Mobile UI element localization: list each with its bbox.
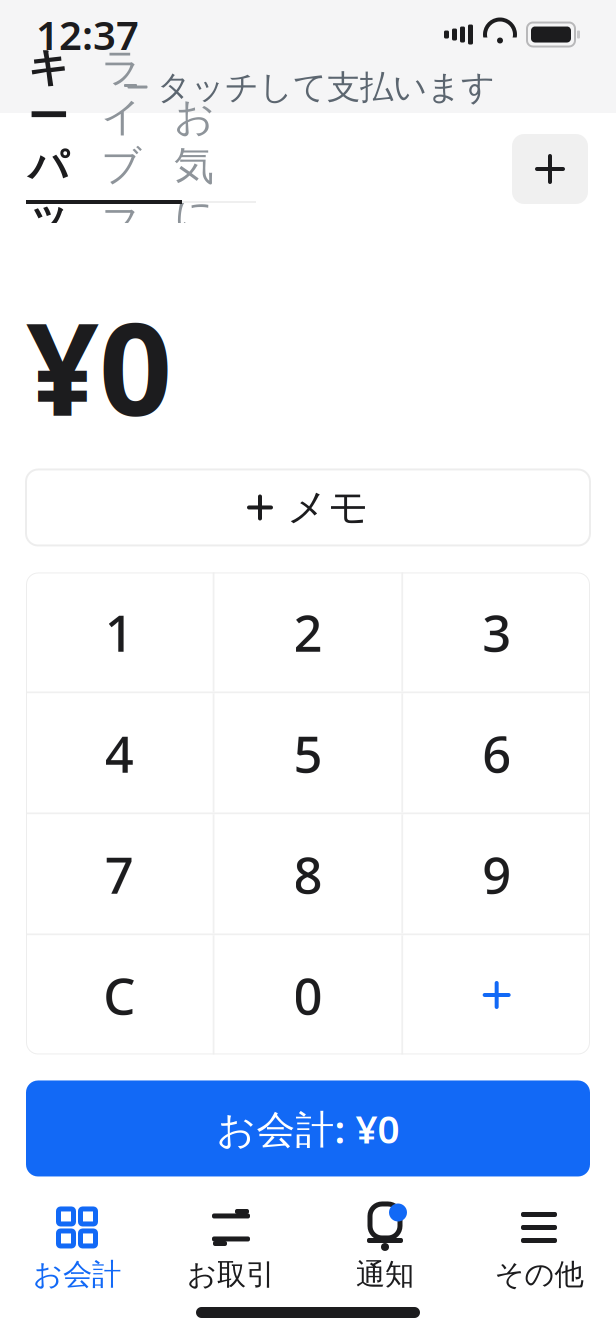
button[interactable]: キーパッド: [26, 43, 71, 289]
button[interactable]: 2: [215, 572, 401, 691]
button[interactable]: 3: [403, 572, 590, 691]
staticText: 2: [293, 598, 322, 666]
staticText: 4: [105, 719, 134, 787]
staticText: 6: [482, 719, 511, 787]
button[interactable]: お取引: [154, 1203, 308, 1297]
button[interactable]: 5: [215, 693, 401, 812]
staticText: お会計: [33, 1256, 121, 1292]
button[interactable]: 7: [26, 814, 213, 933]
button[interactable]: 4: [26, 693, 213, 812]
staticText: C: [103, 961, 135, 1029]
staticText: 8: [293, 840, 322, 908]
button[interactable]: 通知: [308, 1203, 462, 1297]
button[interactable]: お会計: [0, 1203, 154, 1297]
button[interactable]: C: [26, 935, 213, 1054]
button[interactable]: 加算: [403, 935, 590, 1054]
staticText: 7: [105, 840, 134, 908]
staticText: ¥0: [26, 281, 172, 451]
staticText: メモ: [287, 483, 369, 532]
staticText: 9: [482, 840, 511, 908]
button[interactable]: お気に: [172, 92, 217, 240]
staticText: その他: [494, 1256, 583, 1292]
staticText: タッチして支払います: [157, 67, 495, 108]
button[interactable]: 9: [403, 814, 590, 933]
staticText: 1: [105, 598, 134, 666]
staticText: お会計: ¥0: [216, 1103, 399, 1154]
staticText: ライブラリ: [101, 43, 142, 289]
button[interactable]: お会計: ¥0: [26, 1080, 590, 1176]
button[interactable]: 追加: [512, 134, 588, 204]
button[interactable]: 6: [403, 693, 590, 812]
staticText: 12:37: [36, 8, 139, 61]
staticText: お取引: [187, 1256, 275, 1292]
button[interactable]: メモ: [26, 469, 590, 545]
button[interactable]: 0: [215, 935, 401, 1054]
staticText: 0: [293, 961, 322, 1029]
staticText: お気に: [174, 92, 215, 240]
button[interactable]: 1: [26, 572, 213, 691]
button[interactable]: ライブラリ: [99, 43, 144, 289]
staticText: キーパッド: [28, 43, 69, 289]
staticText: 通知: [356, 1256, 414, 1292]
staticText: 5: [293, 719, 322, 787]
staticText: 3: [482, 598, 511, 666]
button[interactable]: 8: [215, 814, 401, 933]
button[interactable]: その他: [462, 1203, 616, 1297]
